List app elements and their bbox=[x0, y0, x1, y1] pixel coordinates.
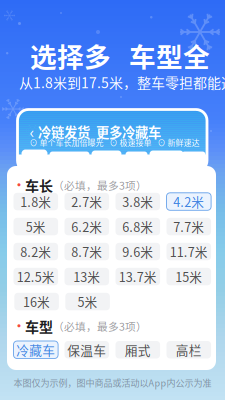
staticText: ⊙ 新鲜速达 bbox=[157, 136, 199, 148]
staticText: ⊙ 单个车长加倍曝光 bbox=[29, 136, 103, 148]
staticText: 本图仅为示例，图中商品或活动以App内公示为准 bbox=[13, 376, 211, 389]
staticText: ‹ bbox=[29, 120, 34, 143]
staticText: 选择多 车型全 bbox=[30, 36, 210, 75]
staticText: 9.6米 bbox=[122, 242, 153, 261]
button[interactable]: 12.5米 bbox=[13, 268, 58, 285]
staticText: • bbox=[13, 317, 25, 335]
button[interactable]: 15米 bbox=[166, 268, 211, 285]
button[interactable]: 高栏 bbox=[166, 341, 211, 358]
button[interactable]: 16米 bbox=[14, 293, 59, 310]
staticText: 车长 bbox=[25, 175, 53, 195]
staticText: 3.8米 bbox=[122, 192, 153, 211]
staticText: • bbox=[13, 176, 25, 194]
button[interactable]: 厢式 bbox=[115, 341, 160, 358]
staticText: 冷链发货 更多冷藏车 bbox=[38, 122, 161, 141]
staticText: 7.7米 bbox=[173, 217, 204, 236]
button[interactable]: 13.7米 bbox=[115, 268, 160, 285]
button[interactable]: 1.8米 bbox=[13, 193, 58, 210]
staticText: 厢式 bbox=[125, 341, 151, 359]
staticText: 车型 bbox=[25, 316, 53, 336]
staticText: 冷藏车 bbox=[16, 341, 55, 359]
staticText: 保温车 bbox=[67, 341, 106, 359]
button[interactable]: 9.6米 bbox=[115, 243, 160, 260]
button[interactable]: 3.8米 bbox=[115, 193, 160, 210]
button[interactable]: 5米 bbox=[13, 218, 58, 235]
button[interactable]: 4.2米 bbox=[166, 193, 211, 210]
staticText: ⊙ 极速接单 bbox=[109, 136, 151, 148]
staticText: （必填，最多3项） bbox=[53, 177, 147, 193]
button[interactable]: 13米 bbox=[64, 268, 109, 285]
button[interactable]: 8.7米 bbox=[64, 243, 109, 260]
button[interactable]: 2.7米 bbox=[64, 193, 109, 210]
staticText: 2.7米 bbox=[71, 192, 102, 211]
button[interactable]: 8.2米 bbox=[13, 243, 58, 260]
staticText: （必填，最多3项） bbox=[53, 318, 147, 334]
staticText: 6.2米 bbox=[71, 217, 102, 236]
button[interactable]: 6.8米 bbox=[115, 218, 160, 235]
staticText: 从1.8米到17.5米，整车零担都能选 bbox=[19, 72, 225, 92]
staticText: 4.2米 bbox=[173, 192, 204, 211]
staticText: 高栏 bbox=[176, 341, 202, 359]
staticText: 16米 bbox=[23, 292, 50, 311]
staticText: 11.7米 bbox=[170, 242, 208, 261]
staticText: 13米 bbox=[73, 267, 100, 286]
staticText: 8.7米 bbox=[71, 242, 102, 261]
button[interactable]: 冷藏车 bbox=[13, 341, 58, 358]
button[interactable]: 7.7米 bbox=[166, 218, 211, 235]
staticText: 5米 bbox=[26, 217, 46, 236]
button[interactable]: 11.7米 bbox=[166, 243, 211, 260]
button[interactable]: 保温车 bbox=[64, 341, 109, 358]
staticText: 1.8米 bbox=[20, 192, 51, 211]
staticText: 5米 bbox=[78, 292, 98, 311]
staticText: 15米 bbox=[175, 267, 202, 286]
button[interactable]: 5米 bbox=[65, 293, 110, 310]
staticText: 6.8米 bbox=[122, 217, 153, 236]
staticText: 13.7米 bbox=[119, 267, 157, 286]
button[interactable]: 6.2米 bbox=[64, 218, 109, 235]
staticText: 8.2米 bbox=[20, 242, 51, 261]
staticText: 12.5米 bbox=[17, 267, 55, 286]
